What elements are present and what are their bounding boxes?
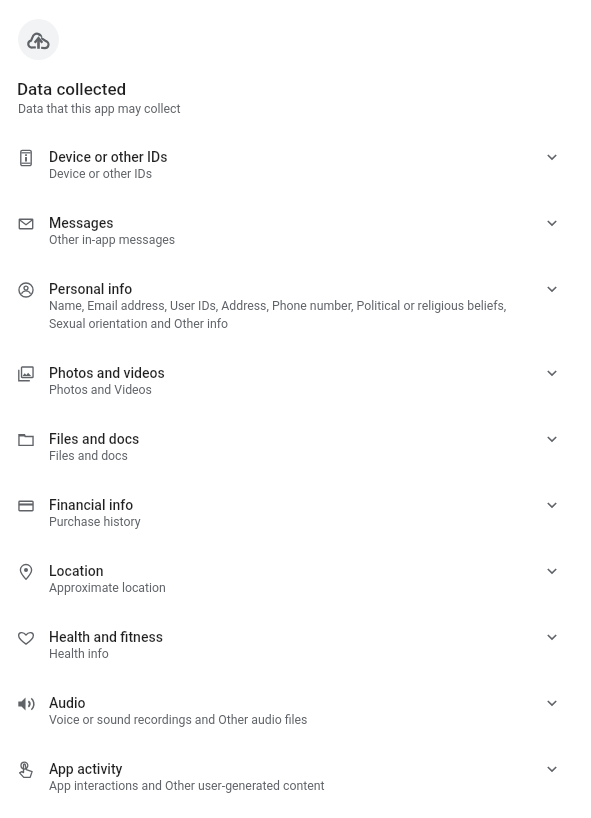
staticText: Financial info (49, 497, 134, 513)
button[interactable]: Device or other IDs (0, 131, 591, 197)
other: Expand (547, 695, 591, 711)
staticText: Health info (49, 647, 109, 661)
staticText: Photos and Videos (49, 383, 152, 397)
other: Expand (547, 431, 591, 447)
staticText: Audio (49, 695, 86, 711)
button[interactable]: Files and docs (0, 413, 591, 479)
staticText: Health and fitness (49, 629, 163, 645)
button[interactable]: Financial info (0, 479, 591, 545)
button[interactable]: App activity (0, 743, 591, 809)
button[interactable]: Messages (0, 197, 591, 263)
other: Expand (547, 761, 591, 777)
button[interactable]: Audio (0, 677, 591, 743)
staticText: Device or other IDs (49, 167, 153, 181)
staticText: Voice or sound recordings and Other audi… (49, 713, 308, 727)
staticText: Photos and videos (49, 365, 165, 381)
other: Expand (547, 497, 591, 513)
staticText: Name, Email address, User IDs, Address, … (49, 299, 519, 331)
button[interactable]: Health and fitness (0, 611, 591, 677)
staticText: App interactions and Other user-generate… (49, 779, 325, 793)
staticText: Data that this app may collect (18, 102, 181, 116)
staticText: Files and docs (49, 449, 128, 463)
staticText: Approximate location (49, 581, 166, 595)
button[interactable]: Photos and videos (0, 347, 591, 413)
other: Expand (547, 629, 591, 645)
staticText: Data collected (17, 79, 127, 99)
other: Expand (547, 365, 591, 381)
staticText: Purchase history (49, 515, 141, 529)
staticText: App activity (49, 761, 123, 777)
staticText: Personal info (49, 281, 133, 297)
other: Expand (547, 149, 591, 165)
staticText: Files and docs (49, 431, 140, 447)
button[interactable]: Personal info (0, 263, 591, 347)
other: Expand (547, 281, 591, 297)
staticText: Messages (49, 215, 114, 231)
staticText: Device or other IDs (49, 149, 168, 165)
staticText: Location (49, 563, 104, 579)
staticText: Other in-app messages (49, 233, 176, 247)
other: Expand (547, 563, 591, 579)
button[interactable]: Location (0, 545, 591, 611)
other: Expand (547, 215, 591, 231)
